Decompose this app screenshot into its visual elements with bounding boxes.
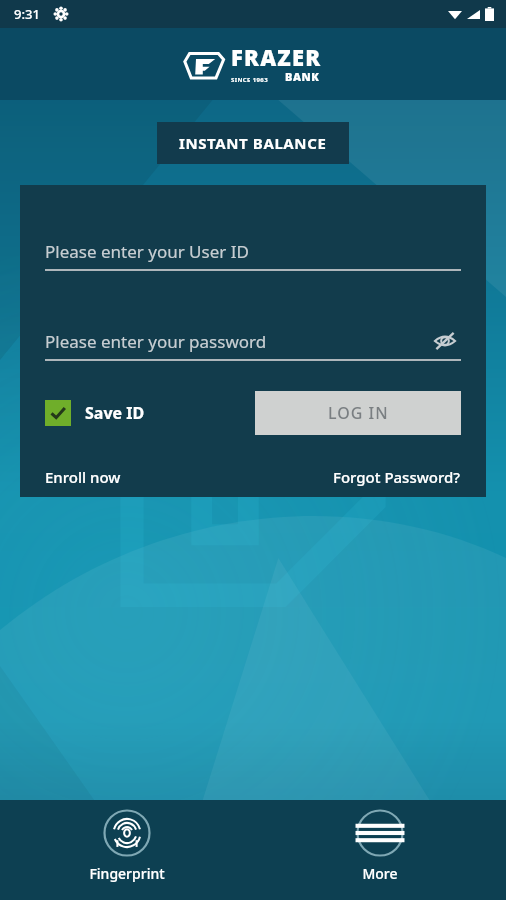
- button[interactable]: Enroll now: [45, 467, 121, 487]
- button[interactable]: Forgot Password?: [333, 467, 461, 487]
- staticText: 9:31: [14, 5, 40, 23]
- staticText: INSTANT BALANCE: [179, 133, 327, 153]
- staticText: BANK: [285, 69, 320, 84]
- button[interactable]: Fingerprint login: [0, 800, 253, 900]
- button[interactable]: More options: [253, 800, 506, 900]
- staticText: Please enter your User ID: [45, 240, 249, 263]
- staticText: Forgot Password?: [333, 467, 461, 487]
- staticText: SINCE 1963: [231, 76, 269, 84]
- other: More options: [356, 809, 404, 857]
- staticText: Enroll now: [45, 467, 121, 487]
- button[interactable]: LOG IN: [255, 391, 461, 435]
- staticText: Fingerprint: [89, 864, 165, 883]
- button[interactable]: Show password: [429, 325, 461, 357]
- button[interactable]: Please enter your User ID: [45, 233, 461, 269]
- button[interactable]: Please enter your password: [45, 323, 461, 359]
- staticText: FRAZER: [231, 42, 322, 72]
- other: Fingerprint login: [103, 809, 151, 857]
- button[interactable]: INSTANT BALANCE: [157, 122, 349, 164]
- staticText: LOG IN: [328, 402, 389, 424]
- staticText: More: [362, 864, 398, 883]
- staticText: Please enter your password: [45, 330, 267, 353]
- button[interactable]: Save ID: [45, 400, 145, 426]
- staticText: Save ID: [85, 402, 145, 424]
